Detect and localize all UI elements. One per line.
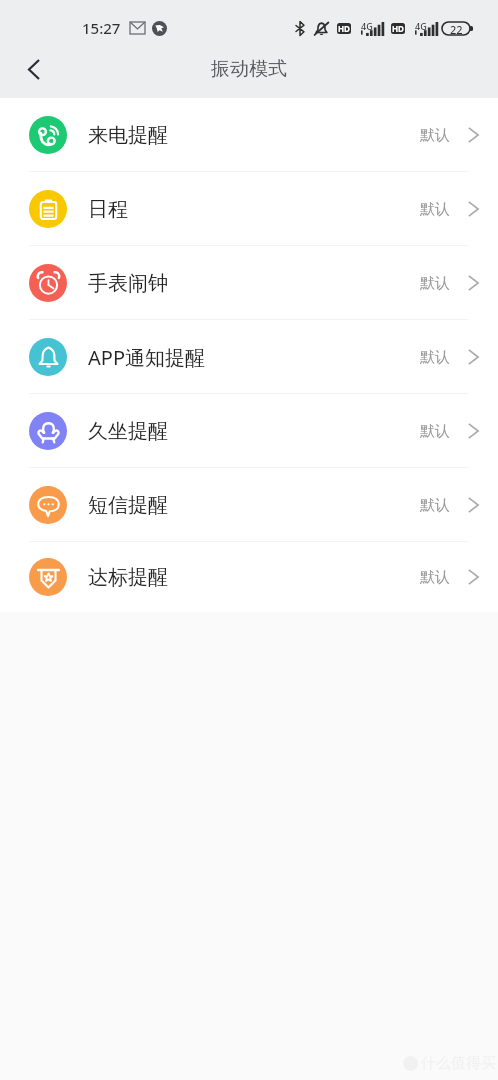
button[interactable]: 短信提醒 [0, 468, 498, 542]
staticText: 默认 [420, 568, 450, 587]
staticText: 默认 [420, 348, 450, 367]
staticText: 久坐提醒 [88, 419, 168, 444]
button[interactable]: 手表闹钟 [0, 246, 498, 320]
staticText: APP通知提醒 [88, 344, 205, 371]
staticText: 短信提醒 [88, 493, 168, 518]
staticText: 什么值得买 [421, 1054, 496, 1073]
staticText: 日程 [88, 197, 128, 222]
staticText: 15:27 [82, 18, 121, 38]
button[interactable]: 达标提醒 [0, 542, 498, 612]
staticText: HD [338, 23, 350, 34]
staticText: 达标提醒 [88, 565, 168, 590]
staticText: 手表闹钟 [88, 271, 168, 296]
button[interactable]: 日程 [0, 172, 498, 246]
button[interactable]: APP通知提醒 [0, 320, 498, 394]
staticText: 4G [361, 20, 373, 32]
button[interactable]: Back [0, 40, 58, 98]
button[interactable]: 来电提醒 [0, 98, 498, 172]
staticText: 默认 [420, 126, 450, 145]
staticText: 默认 [420, 496, 450, 515]
staticText: 4G [415, 20, 427, 32]
staticText: 默认 [420, 422, 450, 441]
staticText: 振动模式 [211, 57, 287, 81]
staticText: HD [392, 23, 404, 34]
staticText: 默认 [420, 200, 450, 219]
button[interactable]: 久坐提醒 [0, 394, 498, 468]
staticText: 来电提醒 [88, 123, 168, 148]
staticText: 默认 [420, 274, 450, 293]
staticText: 22 [450, 22, 463, 35]
